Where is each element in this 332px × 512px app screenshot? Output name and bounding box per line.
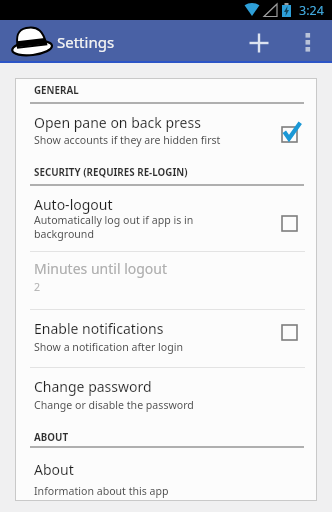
button[interactable] <box>246 30 272 56</box>
button[interactable] <box>278 318 304 344</box>
staticText: Auto-logout <box>34 195 113 214</box>
button[interactable]: About <box>16 449 316 500</box>
staticText: About <box>34 460 74 479</box>
staticText: 2 <box>34 280 41 294</box>
button[interactable] <box>278 120 304 146</box>
staticText: Enable notifications <box>34 319 164 338</box>
staticText: Information about this app <box>34 484 169 498</box>
staticText: ABOUT <box>34 431 69 444</box>
staticText: Settings <box>57 32 115 52</box>
button[interactable] <box>278 209 304 235</box>
button[interactable]: Change password <box>16 368 316 424</box>
staticText: Minutes until logout <box>34 259 167 278</box>
staticText: SECURITY (REQUIRES RE-LOGIN) <box>34 166 188 179</box>
button[interactable]: Minutes until logout <box>16 252 316 310</box>
button[interactable]: Auto-logout <box>16 187 316 252</box>
staticText: Show a notification after login <box>34 340 183 354</box>
staticText: Automatically log out if app is in backg… <box>34 213 194 241</box>
button[interactable]: Open pane on back press <box>16 105 316 152</box>
staticText: Change or disable the password <box>34 398 194 412</box>
staticText: Open pane on back press <box>34 113 201 132</box>
button[interactable]: Enable notifications <box>16 310 316 368</box>
staticText: Show accounts if they are hidden first <box>34 133 221 147</box>
staticText: 3:24 <box>299 2 324 19</box>
button[interactable] <box>296 28 318 56</box>
staticText: Change password <box>34 377 152 396</box>
staticText: GENERAL <box>34 84 79 97</box>
